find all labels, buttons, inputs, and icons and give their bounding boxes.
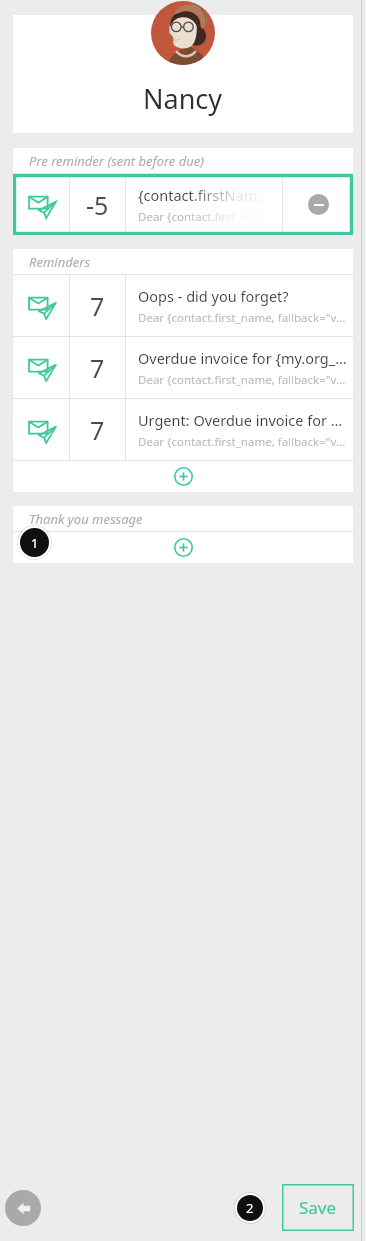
staticText: Oops - did you forget? (138, 286, 289, 306)
staticText: Pre reminder (sent before due) (29, 152, 205, 170)
staticText: 7 (90, 351, 105, 385)
staticText: Overdue invoice for {my.org_na… (138, 348, 347, 368)
staticText: 7 (90, 289, 105, 323)
staticText: Nancy (143, 80, 223, 117)
staticText: Dear {contact.first_name, fallback="va… (138, 310, 347, 326)
staticText: Dear {contact.first_name, fallb… (138, 209, 276, 225)
staticText: Thank you message (29, 510, 143, 528)
button[interactable]: 7 (13, 399, 353, 460)
button[interactable]: Add reminder (13, 461, 353, 492)
button[interactable]: Remove reminder (283, 174, 353, 235)
staticText: Reminders (29, 253, 90, 271)
staticText: Dear {contact.first_name, fallback="va… (138, 372, 347, 388)
staticText: Dear {contact.first_name, fallback="va… (138, 434, 347, 450)
staticText: 7 (90, 413, 105, 447)
button[interactable]: 7 (13, 337, 353, 398)
staticText: 2 (246, 1199, 254, 1217)
staticText: 1 (31, 534, 39, 552)
button[interactable]: -5 (13, 174, 353, 235)
staticText: -5 (86, 188, 109, 222)
staticText: Urgent: Overdue invoice for {my… (138, 410, 347, 430)
button[interactable]: Save (282, 1184, 354, 1231)
staticText: {contact.firstName}, A friendly re… (138, 185, 276, 205)
staticText: Save (299, 1196, 337, 1219)
button[interactable]: Add thank you message (13, 532, 353, 563)
button[interactable]: Back (5, 1190, 41, 1226)
button[interactable]: 7 (13, 275, 353, 336)
